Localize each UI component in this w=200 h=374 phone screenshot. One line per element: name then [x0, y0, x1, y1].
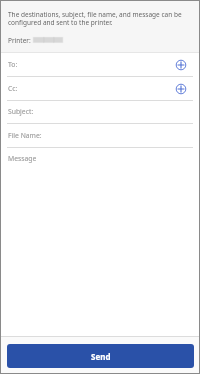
staticText: Printer: [8, 36, 31, 45]
button[interactable]: Cc: [0, 77, 200, 101]
button[interactable]: To: [0, 53, 200, 77]
staticText: To: [8, 60, 18, 69]
staticText: Cc: [8, 84, 18, 93]
button[interactable]: Send [7, 344, 194, 368]
button[interactable]: Add recipient [174, 58, 188, 72]
staticText: Subject: [8, 107, 34, 116]
button[interactable]: Subject: [0, 100, 200, 124]
staticText: The destinations, subject, file name, an… [8, 10, 182, 19]
button[interactable]: Add recipient [174, 82, 188, 96]
button[interactable]: File Name: [0, 124, 200, 148]
staticText: Message [8, 154, 37, 163]
button[interactable]: Message [0, 147, 200, 171]
staticText: Send [91, 351, 111, 362]
staticText: File Name: [8, 131, 42, 140]
staticText: configured and sent to the printer. [8, 18, 113, 27]
